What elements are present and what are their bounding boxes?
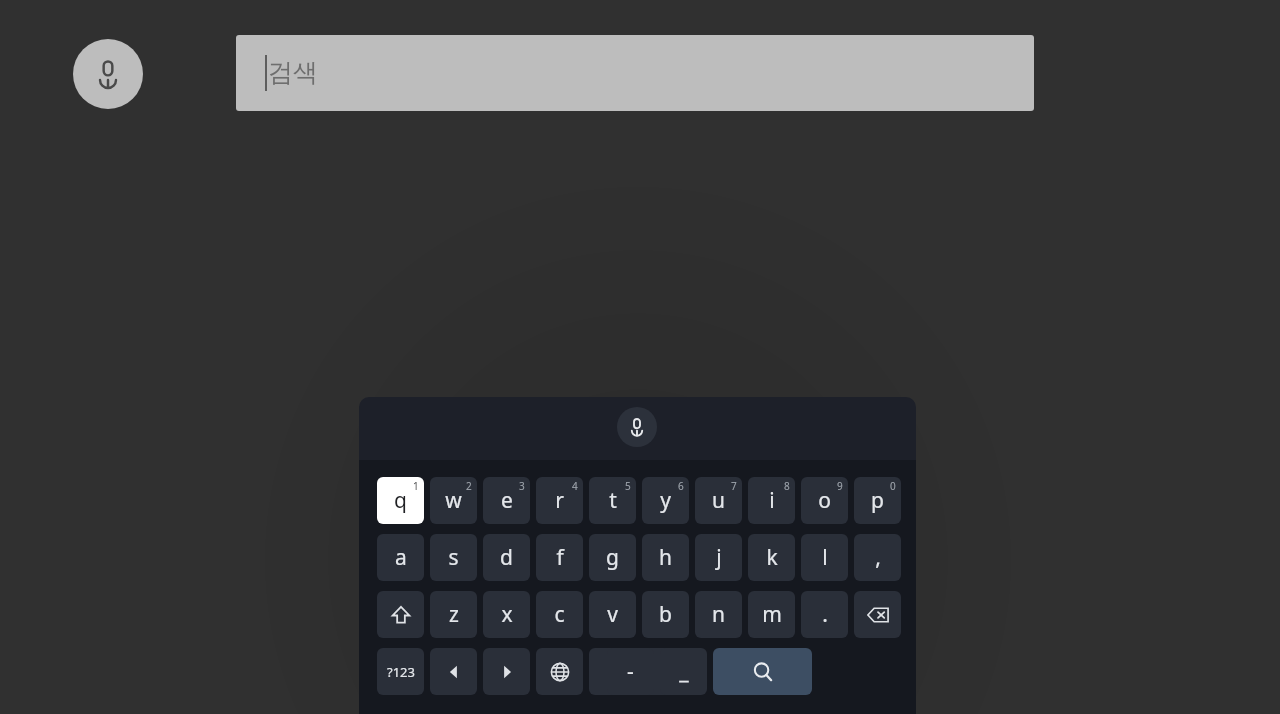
button[interactable]: c (536, 591, 583, 638)
button[interactable]: , (854, 534, 901, 581)
button[interactable]: Search (713, 648, 812, 695)
staticText: z (449, 600, 459, 629)
staticText: o (818, 486, 831, 515)
button[interactable]: o (801, 477, 848, 524)
button[interactable]: . (801, 591, 848, 638)
staticText: w (445, 486, 462, 515)
button[interactable]: y (642, 477, 689, 524)
button[interactable]: m (748, 591, 795, 638)
staticText: 1 (413, 479, 419, 493)
staticText: e (501, 486, 513, 515)
staticText: r (555, 486, 564, 515)
staticText: b (659, 600, 672, 629)
staticText: n (712, 600, 725, 629)
button[interactable]: e (483, 477, 530, 524)
staticText: 검색 (268, 57, 318, 88)
button[interactable]: Move left (430, 648, 477, 695)
staticText: s (448, 543, 459, 572)
button[interactable]: Voice search (73, 39, 143, 109)
staticText: 7 (731, 479, 737, 493)
staticText: - (627, 657, 634, 686)
staticText: p (871, 486, 884, 515)
button[interactable]: d (483, 534, 530, 581)
staticText: u (712, 486, 725, 515)
button[interactable]: n (695, 591, 742, 638)
button[interactable]: ?123 (377, 648, 424, 695)
button[interactable]: Move right (483, 648, 530, 695)
button[interactable]: w (430, 477, 477, 524)
button[interactable]: s (430, 534, 477, 581)
staticText: f (556, 543, 564, 572)
button[interactable]: b (642, 591, 689, 638)
button[interactable]: g (589, 534, 636, 581)
staticText: ?123 (387, 663, 415, 681)
button[interactable]: v (589, 591, 636, 638)
button[interactable]: k (748, 534, 795, 581)
button[interactable]: a (377, 534, 424, 581)
staticText: 8 (784, 479, 790, 493)
button[interactable]: l (801, 534, 848, 581)
staticText: h (659, 543, 672, 572)
staticText: 9 (837, 479, 843, 493)
button[interactable]: j (695, 534, 742, 581)
staticText: l (822, 543, 828, 572)
button[interactable]: Space (589, 648, 689, 695)
button[interactable]: 검색 (236, 35, 1034, 111)
staticText: a (395, 543, 407, 572)
staticText: d (500, 543, 513, 572)
staticText: 3 (519, 479, 525, 493)
button[interactable]: r (536, 477, 583, 524)
button[interactable]: x (483, 591, 530, 638)
staticText: 5 (625, 479, 631, 493)
button[interactable]: i (748, 477, 795, 524)
button[interactable]: Change language (536, 648, 583, 695)
staticText: 6 (678, 479, 684, 493)
button[interactable]: z (430, 591, 477, 638)
staticText: q (394, 486, 407, 515)
staticText: t (609, 486, 617, 515)
staticText: x (501, 600, 513, 629)
staticText: i (769, 486, 775, 515)
button[interactable]: _ (660, 648, 707, 695)
staticText: c (554, 600, 565, 629)
button[interactable]: u (695, 477, 742, 524)
staticText: 0 (890, 479, 896, 493)
staticText: , (875, 543, 881, 572)
staticText: k (766, 543, 778, 572)
staticText: g (606, 543, 619, 572)
button[interactable]: Shift (377, 591, 424, 638)
staticText: v (607, 600, 618, 629)
button[interactable]: t (589, 477, 636, 524)
staticText: j (716, 543, 722, 572)
staticText: 2 (466, 479, 472, 493)
button[interactable]: - (607, 648, 654, 695)
button[interactable]: q (377, 477, 424, 524)
staticText: 4 (572, 479, 578, 493)
button[interactable]: p (854, 477, 901, 524)
button[interactable]: h (642, 534, 689, 581)
staticText: . (822, 600, 828, 629)
button[interactable]: Backspace (854, 591, 901, 638)
staticText: m (762, 600, 782, 629)
staticText: y (660, 486, 671, 515)
staticText: _ (679, 657, 689, 686)
button[interactable]: Voice input (617, 407, 657, 447)
button[interactable]: f (536, 534, 583, 581)
